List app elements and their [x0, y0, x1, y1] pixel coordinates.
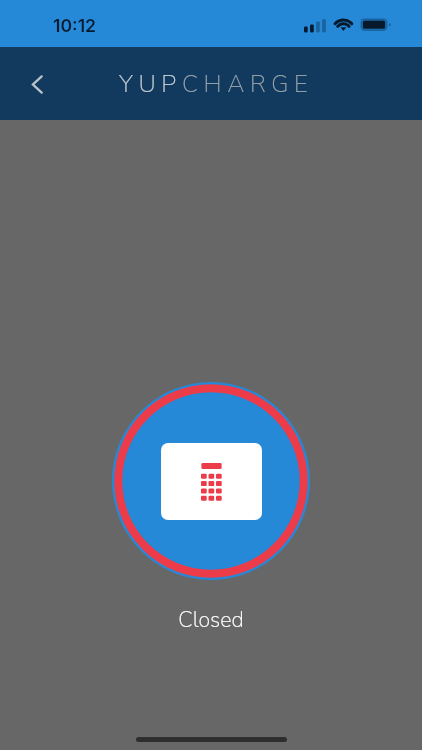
staticText: CHARGE: [182, 68, 314, 101]
staticText: 10:12: [53, 15, 97, 36]
staticText: YUP: [119, 68, 182, 101]
button[interactable]: Closed station: [112, 382, 310, 580]
button[interactable]: Back: [15, 62, 59, 106]
staticText: Closed: [178, 605, 244, 634]
